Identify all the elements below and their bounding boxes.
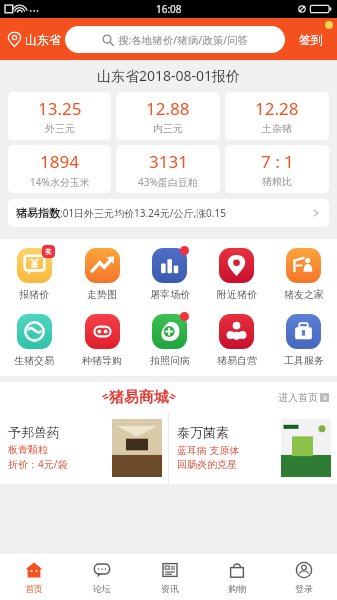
staticText: 种猪导购: [82, 354, 122, 367]
staticText: 7 : 1: [261, 150, 294, 173]
staticText: 泰万菌素: [177, 424, 229, 440]
button[interactable]: 资讯: [136, 554, 203, 600]
button[interactable]: 登录: [270, 554, 337, 600]
other: Product image: [112, 419, 162, 477]
staticText: 报猪价: [19, 288, 49, 301]
staticText: 猪易自营: [217, 354, 257, 367]
button[interactable]: 3131: [116, 145, 220, 193]
button[interactable]: 猪友之家: [270, 246, 337, 303]
button[interactable]: 予邦兽药: [0, 412, 168, 484]
button[interactable]: 首页: [0, 554, 68, 600]
staticText: 13.25: [38, 97, 82, 120]
staticText: 折价：4元/袋: [8, 457, 68, 471]
staticText: 3131: [149, 150, 188, 173]
button[interactable]: 生猪交易: [0, 312, 68, 369]
staticText: 16:08: [156, 2, 182, 16]
staticText: 板青颗粒: [8, 443, 48, 456]
button[interactable]: 猪易自营: [203, 312, 270, 369]
staticText: 12.88: [146, 97, 190, 120]
staticText: 内三元: [153, 122, 183, 135]
staticText: 附近猪价: [217, 288, 257, 301]
button[interactable]: 7 : 1: [225, 145, 329, 193]
button[interactable]: 泰万菌素: [169, 412, 337, 484]
staticText: 签到: [299, 32, 323, 47]
staticText: 回肠炎的克星: [177, 458, 237, 471]
staticText: 蓝耳病 支原体: [177, 443, 240, 457]
button[interactable]: 13.25: [8, 92, 111, 140]
staticText: 猪友之家: [284, 288, 324, 301]
button[interactable]: 签到: [285, 18, 337, 60]
button[interactable]: 附近猪价: [203, 246, 270, 303]
button[interactable]: 工具服务: [270, 312, 337, 369]
staticText: 予邦兽药: [8, 424, 60, 440]
staticText: 14%水分玉米: [30, 175, 90, 189]
button[interactable]: 种猪导购: [68, 312, 136, 369]
staticText: 论坛: [93, 583, 111, 594]
staticText: 43%蛋白豆粕: [138, 175, 198, 189]
staticText: 山东省: [25, 32, 61, 47]
other: Location: [7, 32, 22, 47]
button[interactable]: 1894: [8, 145, 111, 193]
staticText: 走势图: [87, 288, 117, 301]
button[interactable]: 进入首页: [278, 391, 337, 404]
button[interactable]: 12.88: [116, 92, 220, 140]
staticText: 外三元: [45, 122, 75, 135]
staticText: 12.28: [255, 97, 299, 120]
staticText: 资讯: [161, 583, 179, 594]
button[interactable]: 论坛: [68, 554, 136, 600]
staticText: 猪易商城: [109, 388, 169, 407]
staticText: 登录: [295, 583, 313, 594]
button[interactable]: 屠宰场价: [136, 246, 203, 303]
staticText: 山东省2018-08-01报价: [0, 66, 337, 85]
staticText: 生猪交易: [14, 354, 54, 367]
staticText: 首页: [25, 583, 43, 594]
staticText: :01日外三元均价13.24元/公斤,涨0.15: [60, 206, 226, 220]
staticText: 进入首页: [278, 391, 318, 404]
staticText: 屠宰场价: [150, 288, 190, 301]
other: Product image: [281, 419, 331, 477]
staticText: 拍照问病: [150, 354, 190, 367]
button[interactable]: 拍照问病: [136, 312, 203, 369]
button[interactable]: 走势图: [68, 246, 136, 303]
button[interactable]: 购物: [203, 554, 270, 600]
staticText: 工具服务: [284, 354, 324, 367]
staticText: 1894: [40, 150, 79, 173]
button[interactable]: 12.28: [225, 92, 329, 140]
staticText: 购物: [228, 583, 246, 594]
button[interactable]: 奖: [0, 246, 68, 303]
button[interactable]: 猪易指数: [8, 199, 329, 227]
staticText: 搜:各地猪价/猪病/政策/问答: [118, 33, 249, 47]
staticText: 猪粮比: [262, 175, 292, 188]
staticText: 奖: [45, 247, 52, 256]
staticText: 土杂猪: [262, 122, 292, 135]
button[interactable]: 搜:各地猪价/猪病/政策/问答: [65, 26, 285, 53]
staticText: 猪易指数: [16, 206, 60, 220]
button[interactable]: Location: [0, 28, 65, 51]
